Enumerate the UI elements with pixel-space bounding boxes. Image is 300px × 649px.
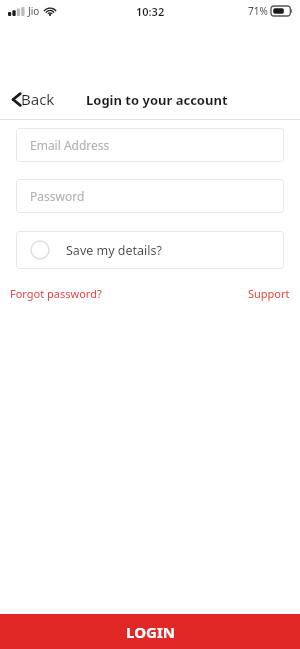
staticText: Forgot password? [10,286,102,301]
button[interactable]: Forgot password? [8,283,104,304]
staticText: Login to your account [86,91,228,109]
staticText: Jio [28,4,40,18]
staticText: Back [21,89,55,109]
button[interactable]: Support [246,283,292,304]
button[interactable]: Back [8,86,59,112]
staticText: Save my details? [66,242,162,259]
staticText: Password [30,188,85,204]
button[interactable]: LOGIN [0,614,300,649]
button[interactable]: Save my details? [16,231,284,269]
button[interactable]: Password [16,179,284,213]
staticText: 10:32 [136,4,165,19]
staticText: LOGIN [126,622,175,642]
staticText: Support [248,286,290,301]
staticText: 71% [248,4,268,18]
staticText: Email Address [30,137,110,153]
button[interactable]: Email Address [16,128,284,162]
